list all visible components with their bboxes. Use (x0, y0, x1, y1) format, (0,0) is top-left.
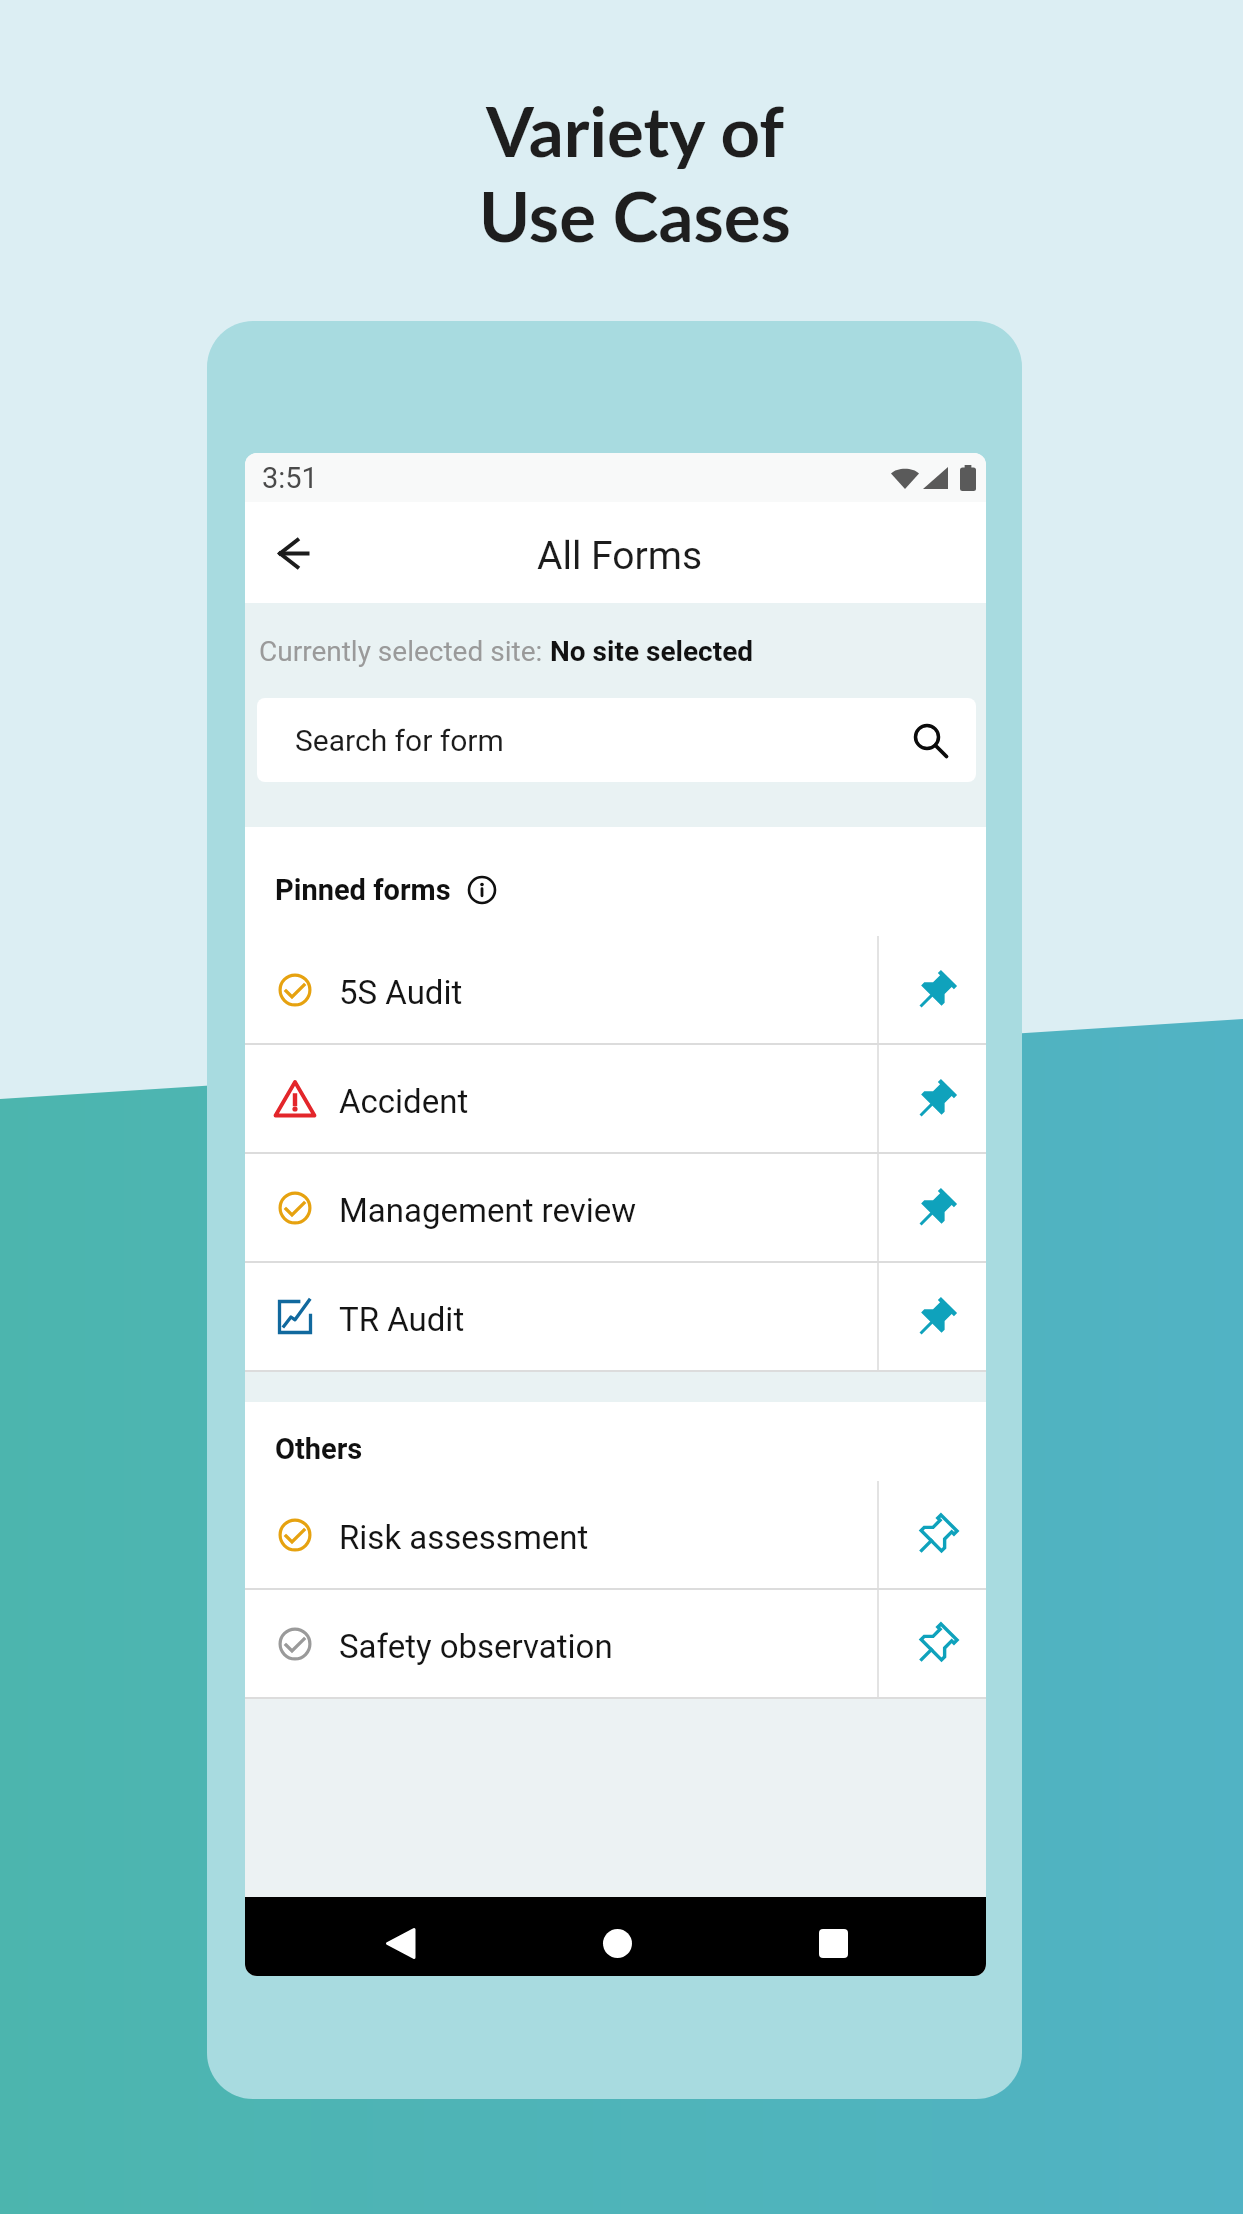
button[interactable]: Unpin (878, 936, 986, 1043)
staticText: Risk assessment (339, 1518, 589, 1557)
button[interactable]: Back (245, 502, 986, 603)
staticText: Accident (339, 1082, 469, 1121)
staticText: Management review (339, 1191, 637, 1230)
button[interactable]: Safety observation (245, 1590, 878, 1697)
button[interactable]: Unpin (878, 1263, 986, 1370)
staticText: Variety of Use Cases (479, 89, 791, 257)
button[interactable]: Risk assessment (245, 1481, 878, 1588)
button[interactable]: Accident (245, 1045, 878, 1152)
button[interactable]: Info (467, 875, 497, 905)
button[interactable]: Recents (793, 1904, 873, 1976)
button[interactable]: Pin (878, 1481, 986, 1588)
staticText: Others (275, 1432, 363, 1466)
staticText: Currently selected site: (259, 635, 550, 668)
button[interactable]: TR Audit (245, 1263, 878, 1370)
button[interactable]: 5S Audit (245, 936, 878, 1043)
staticText: 5S Audit (339, 973, 463, 1012)
button[interactable]: Unpin (878, 1154, 986, 1261)
staticText: All Forms (537, 533, 703, 579)
staticText: TR Audit (339, 1300, 465, 1339)
staticText: Search for form (295, 723, 504, 758)
button[interactable]: Back (360, 1904, 440, 1976)
button[interactable]: Search for form (257, 698, 976, 782)
button[interactable]: Back (254, 513, 334, 593)
staticText: Pinned forms (275, 873, 451, 907)
button[interactable]: Home (577, 1904, 657, 1976)
button[interactable]: Unpin (878, 1045, 986, 1152)
staticText: No site selected (550, 635, 754, 668)
staticText: Safety observation (339, 1627, 613, 1666)
button[interactable]: Pin (878, 1590, 986, 1697)
button[interactable]: Management review (245, 1154, 878, 1261)
staticText: 3:51 (262, 461, 318, 495)
